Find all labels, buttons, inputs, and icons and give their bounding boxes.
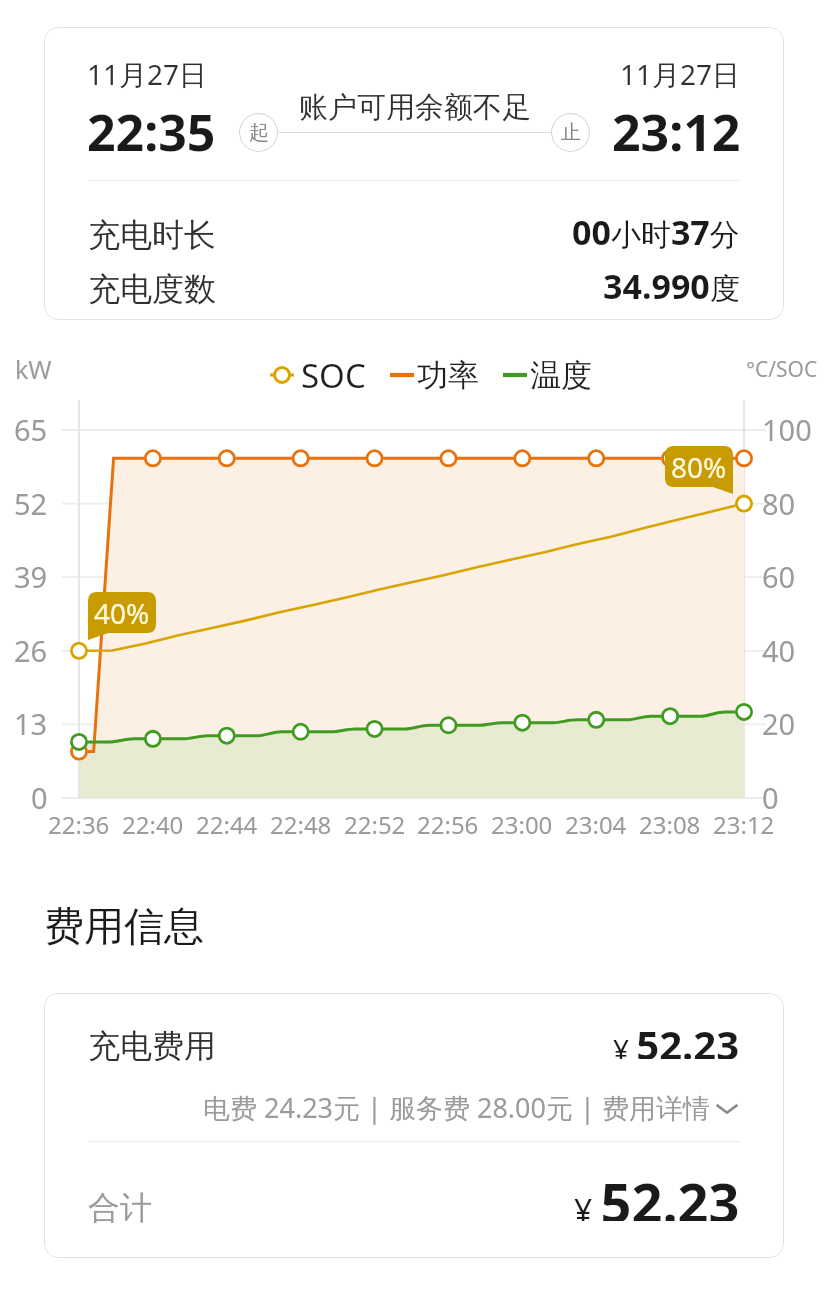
staticText: 39: [14, 557, 48, 593]
staticText: 止: [561, 120, 581, 145]
staticText: 65: [14, 410, 48, 446]
staticText: 100: [762, 410, 812, 446]
button[interactable]: 电费 24.23元 | 服务费 28.00元 | 费用详情: [203, 1089, 740, 1126]
staticText: ¥ 52.23: [613, 1017, 740, 1059]
staticText: 80: [762, 484, 796, 520]
staticText: 0: [31, 778, 48, 814]
staticText: °C/SOC: [746, 355, 818, 384]
staticText: 合计: [88, 1188, 152, 1228]
staticText: 22:40: [122, 808, 184, 841]
staticText: 充电费用: [88, 1026, 216, 1066]
staticText: 40%: [94, 594, 150, 632]
staticText: 60: [762, 557, 796, 593]
staticText: 23:12: [612, 98, 741, 166]
staticText: 13: [14, 704, 48, 740]
staticText: 账户可用余额不足: [299, 89, 531, 126]
staticText: kW: [15, 352, 52, 386]
staticText: 23:08: [639, 808, 701, 841]
staticText: 费用信息: [44, 901, 204, 951]
staticText: 11月27日: [87, 55, 208, 93]
staticText: 充电度数: [88, 269, 216, 309]
staticText: 22:56: [417, 808, 479, 841]
staticText: 功率: [417, 356, 479, 395]
staticText: 23:12: [713, 808, 775, 841]
staticText: ¥ 52.23: [574, 1165, 740, 1221]
staticText: 20: [762, 704, 796, 740]
staticText: 起: [249, 120, 269, 145]
staticText: 40: [762, 631, 796, 667]
staticText: 23:00: [491, 808, 553, 841]
staticText: SOC: [301, 353, 366, 397]
staticText: 22:36: [48, 808, 110, 841]
staticText: 电费 24.23元 | 服务费 28.00元 | 费用详情: [203, 1089, 710, 1126]
staticText: 26: [14, 631, 48, 667]
staticText: 22:35: [87, 98, 216, 166]
staticText: 充电时长: [88, 215, 216, 255]
staticText: 11月27日: [620, 55, 741, 93]
staticText: 80%: [671, 448, 727, 486]
staticText: 22:48: [270, 808, 332, 841]
staticText: 23:04: [565, 808, 627, 841]
staticText: 22:52: [344, 808, 406, 841]
staticText: 0: [762, 778, 779, 814]
staticText: 34.990度: [603, 263, 740, 309]
staticText: 22:44: [196, 808, 258, 841]
button[interactable]: 11月27日: [44, 27, 784, 320]
staticText: 00小时37分: [572, 209, 740, 255]
staticText: 52: [14, 484, 48, 520]
staticText: 温度: [530, 356, 592, 395]
